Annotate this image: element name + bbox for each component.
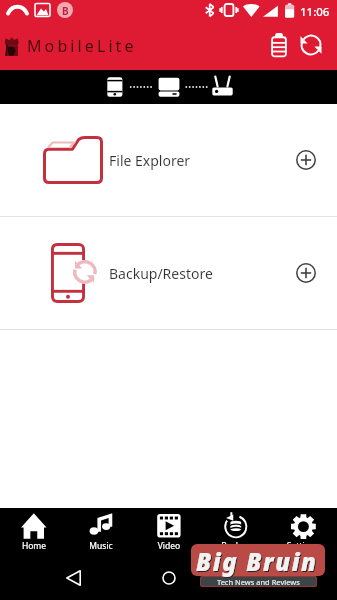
button[interactable]: Add — [284, 251, 328, 295]
staticText: Home — [10, 540, 58, 552]
button[interactable]: File Explorer — [0, 104, 337, 216]
button[interactable]: Music — [68, 508, 136, 555]
staticText: Music — [77, 540, 125, 552]
staticText: Backup — [212, 540, 260, 552]
button[interactable]: Battery status — [256, 20, 302, 70]
button[interactable]: Add — [284, 138, 328, 182]
button[interactable]: Video — [136, 508, 203, 555]
staticText: B — [62, 4, 69, 18]
button[interactable]: Home — [0, 508, 68, 555]
staticText: Video — [145, 540, 193, 552]
staticText: MobileLite — [27, 35, 137, 57]
button[interactable]: Backup/Restore — [0, 217, 337, 329]
button[interactable]: Refresh — [288, 20, 334, 70]
staticText: Big Bruin — [196, 545, 318, 578]
button[interactable]: Back — [50, 555, 96, 600]
staticText: File Explorer — [109, 151, 191, 170]
staticText: Settings — [279, 540, 327, 552]
button[interactable]: Backup — [203, 508, 270, 555]
staticText: Big Bruin — [197, 546, 319, 579]
button[interactable]: Recent apps — [241, 555, 287, 600]
staticText: Backup/Restore — [109, 264, 213, 283]
button[interactable]: Settings — [270, 508, 337, 555]
staticText: 11:06 — [300, 4, 330, 20]
staticText: Tech News and Reviews — [217, 577, 300, 586]
button[interactable]: Home — [146, 555, 192, 600]
